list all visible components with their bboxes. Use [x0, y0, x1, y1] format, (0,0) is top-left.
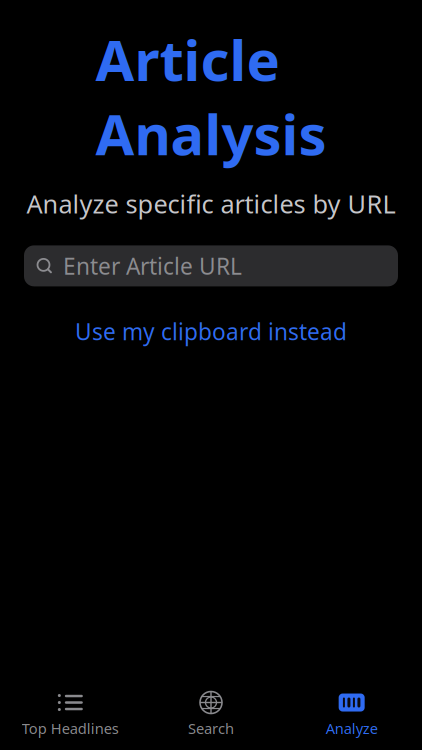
staticText: Article Analysis — [95, 22, 326, 171]
button[interactable]: Use my clipboard instead — [63, 308, 359, 354]
button[interactable]: Analyze — [281, 685, 422, 746]
staticText: Enter Article URL — [63, 251, 242, 281]
staticText: Use my clipboard instead — [75, 316, 347, 346]
staticText: Analyze — [326, 718, 378, 738]
button[interactable]: Enter Article URL — [24, 245, 398, 286]
staticText: Search — [188, 718, 234, 738]
button[interactable]: Top Headlines — [0, 685, 141, 746]
staticText: Analyze specific articles by URL — [26, 187, 395, 220]
staticText: Top Headlines — [22, 718, 119, 738]
button[interactable]: Search — [141, 685, 281, 746]
